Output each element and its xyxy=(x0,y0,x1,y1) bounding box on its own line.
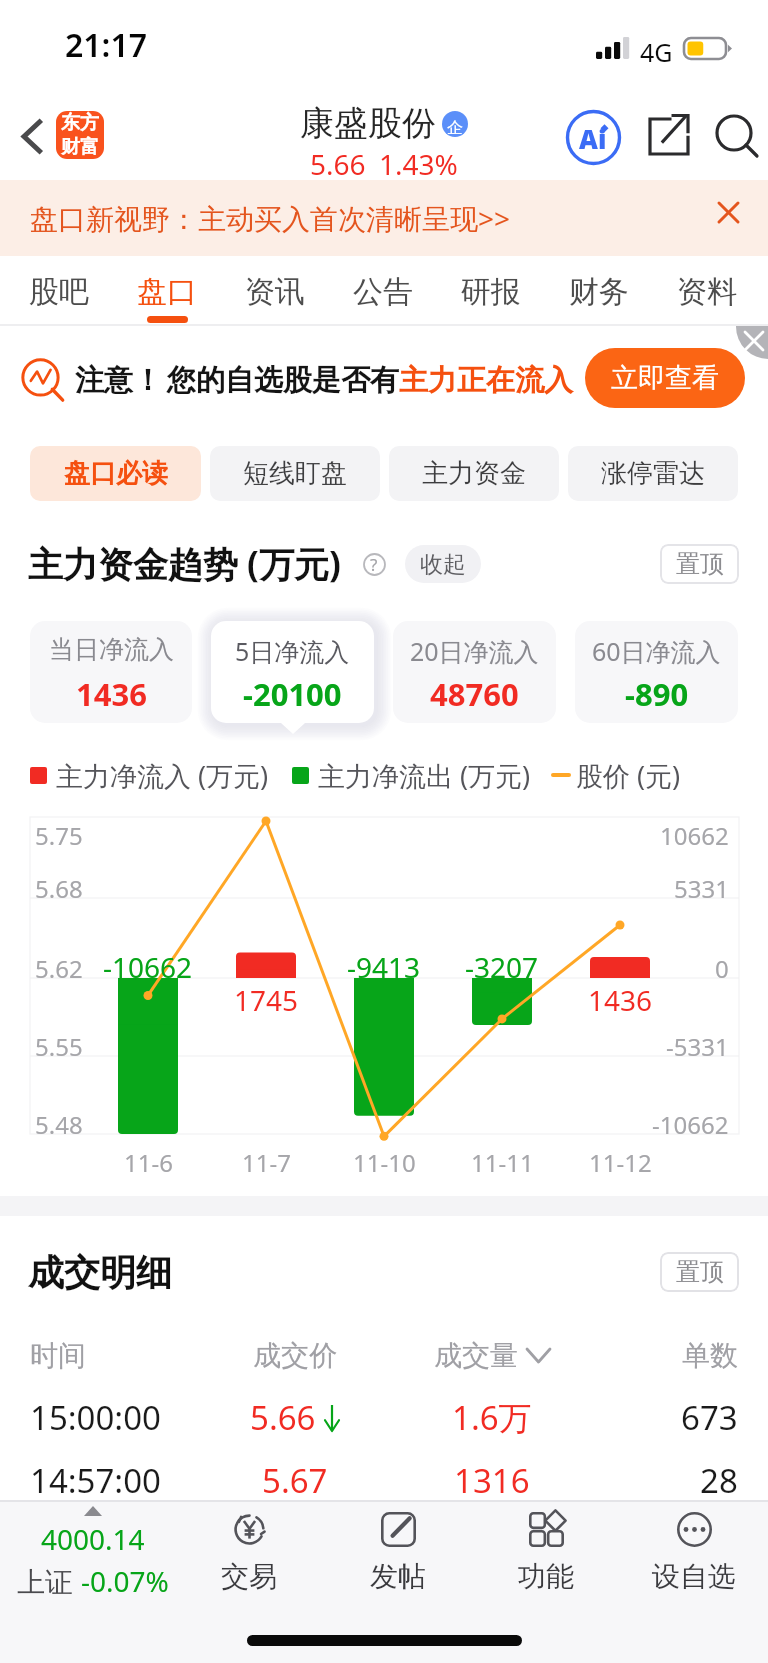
button[interactable]: Share xyxy=(644,110,694,160)
staticText: 11-6 xyxy=(124,1146,173,1179)
staticText: 673 xyxy=(681,1395,738,1440)
staticText: 资讯 xyxy=(245,273,305,311)
button[interactable]: 涨停雷达 xyxy=(568,446,738,501)
staticText: 主力净流出 (万元) xyxy=(318,757,531,794)
staticText: 主力正在流入 xyxy=(399,362,573,399)
staticText: 60日净流入 xyxy=(592,634,721,668)
button[interactable]: 短线盯盘 xyxy=(210,446,380,501)
staticText: 5.55 xyxy=(35,1030,83,1063)
staticText: 财富 xyxy=(61,135,99,159)
staticText: 48760 xyxy=(430,673,519,715)
staticText: 康盛股份 xyxy=(300,102,436,145)
button[interactable]: AI assistant xyxy=(565,109,621,165)
staticText: 主力资金趋势 (万元) xyxy=(28,540,341,588)
button[interactable]: 交易 xyxy=(189,1512,309,1594)
staticText: 公告 xyxy=(353,273,413,311)
staticText: 5.66 xyxy=(250,1395,316,1440)
staticText: 28 xyxy=(700,1458,738,1503)
button[interactable]: Back xyxy=(5,110,57,162)
staticText: 当日净流入 xyxy=(49,634,174,665)
button[interactable]: 14:57:00 xyxy=(0,1451,768,1509)
staticText: 上证 xyxy=(17,1562,81,1600)
staticText: -10662 xyxy=(652,1108,729,1141)
staticText: 5.67 xyxy=(262,1458,328,1503)
staticText: 1316 xyxy=(454,1458,530,1503)
staticText: 企 xyxy=(447,118,463,137)
button[interactable]: East Money home xyxy=(56,111,104,159)
staticText: 20日净流入 xyxy=(410,634,539,668)
staticText: 5.75 xyxy=(35,819,83,852)
button[interactable]: 资料 xyxy=(653,256,761,326)
staticText: 股吧 xyxy=(29,273,89,311)
button[interactable]: 功能 xyxy=(486,1512,606,1594)
button[interactable]: 5日净流入 xyxy=(211,621,374,723)
staticText: 15:00:00 xyxy=(30,1395,161,1440)
staticText: ? xyxy=(370,553,378,576)
staticText: 主力资金 xyxy=(422,457,526,490)
staticText: 5331 xyxy=(674,872,729,905)
staticText: 您的自选股是否有 xyxy=(167,362,399,399)
button[interactable]: 主力资金 xyxy=(389,446,559,501)
staticText: 资料 xyxy=(677,273,737,311)
staticText: 时间 xyxy=(30,1338,86,1373)
staticText: 5.48 xyxy=(35,1108,83,1141)
button[interactable]: 财务 xyxy=(545,256,653,326)
staticText: 5日净流入 xyxy=(235,634,350,668)
staticText: -0.07% xyxy=(81,1562,169,1600)
staticText: -20100 xyxy=(243,673,342,715)
button[interactable]: 设自选 xyxy=(634,1512,754,1594)
staticText: Ai xyxy=(579,121,607,156)
button[interactable]: 4000.14 xyxy=(0,1506,186,1600)
button[interactable]: 置顶 xyxy=(660,1252,739,1292)
button[interactable]: 20日净流入 xyxy=(393,621,556,723)
staticText: 注意！ xyxy=(75,362,162,399)
staticText: 收起 xyxy=(420,550,466,579)
staticText: 置顶 xyxy=(676,1257,724,1287)
button[interactable]: Help xyxy=(358,548,390,580)
staticText: -3207 xyxy=(465,948,539,986)
staticText: 主力净流入 (万元) xyxy=(56,757,269,794)
staticText: 立即查看 xyxy=(611,361,719,395)
staticText: 5.66 xyxy=(310,145,366,183)
button[interactable]: 当日净流入 xyxy=(30,621,192,723)
staticText: 盘口 xyxy=(137,273,197,311)
staticText: 1.6万 xyxy=(452,1395,532,1440)
button[interactable]: 公告 xyxy=(329,256,437,326)
staticText: 短线盯盘 xyxy=(243,457,347,490)
staticText: 单数 xyxy=(682,1338,738,1373)
staticText: 5.62 xyxy=(35,952,83,985)
button[interactable]: 盘口新视野：主动买入首次清晰呈现>> xyxy=(0,180,768,256)
button[interactable]: 60日净流入 xyxy=(575,621,738,723)
button[interactable]: 置顶 xyxy=(660,544,739,584)
button[interactable]: 盘口 xyxy=(113,256,221,326)
button[interactable]: 盘口必读 xyxy=(30,446,201,501)
button[interactable]: 资讯 xyxy=(221,256,329,326)
button[interactable]: 15:00:00 xyxy=(0,1388,768,1446)
staticText: 1.43% xyxy=(379,145,458,183)
button[interactable]: 收起 xyxy=(405,545,481,583)
staticText: 11-10 xyxy=(353,1146,416,1179)
staticText: 涨停雷达 xyxy=(601,457,705,490)
button[interactable]: Close banner xyxy=(705,189,752,236)
staticText: 股价 (元) xyxy=(576,757,681,794)
button[interactable]: 发帖 xyxy=(338,1512,458,1594)
staticText: -890 xyxy=(625,673,689,715)
button[interactable]: 立即查看 xyxy=(585,348,745,408)
staticText: 21:17 xyxy=(65,23,148,67)
staticText: -9413 xyxy=(347,948,421,986)
staticText: 研报 xyxy=(461,273,521,311)
staticText: -5331 xyxy=(666,1030,729,1063)
button[interactable]: Search xyxy=(706,105,762,161)
staticText: 11-7 xyxy=(242,1146,291,1179)
staticText: 1436 xyxy=(588,981,653,1019)
button[interactable]: 研报 xyxy=(437,256,545,326)
button[interactable]: Close ad xyxy=(734,326,768,366)
staticText: -10662 xyxy=(103,948,193,986)
staticText: 成交量 xyxy=(434,1338,518,1373)
button[interactable]: 股吧 xyxy=(5,256,113,326)
staticText: 功能 xyxy=(518,1559,574,1594)
staticText: 交易 xyxy=(221,1559,277,1594)
staticText: 1745 xyxy=(234,981,299,1019)
staticText: 1436 xyxy=(76,673,147,715)
staticText: 11-11 xyxy=(471,1146,534,1179)
